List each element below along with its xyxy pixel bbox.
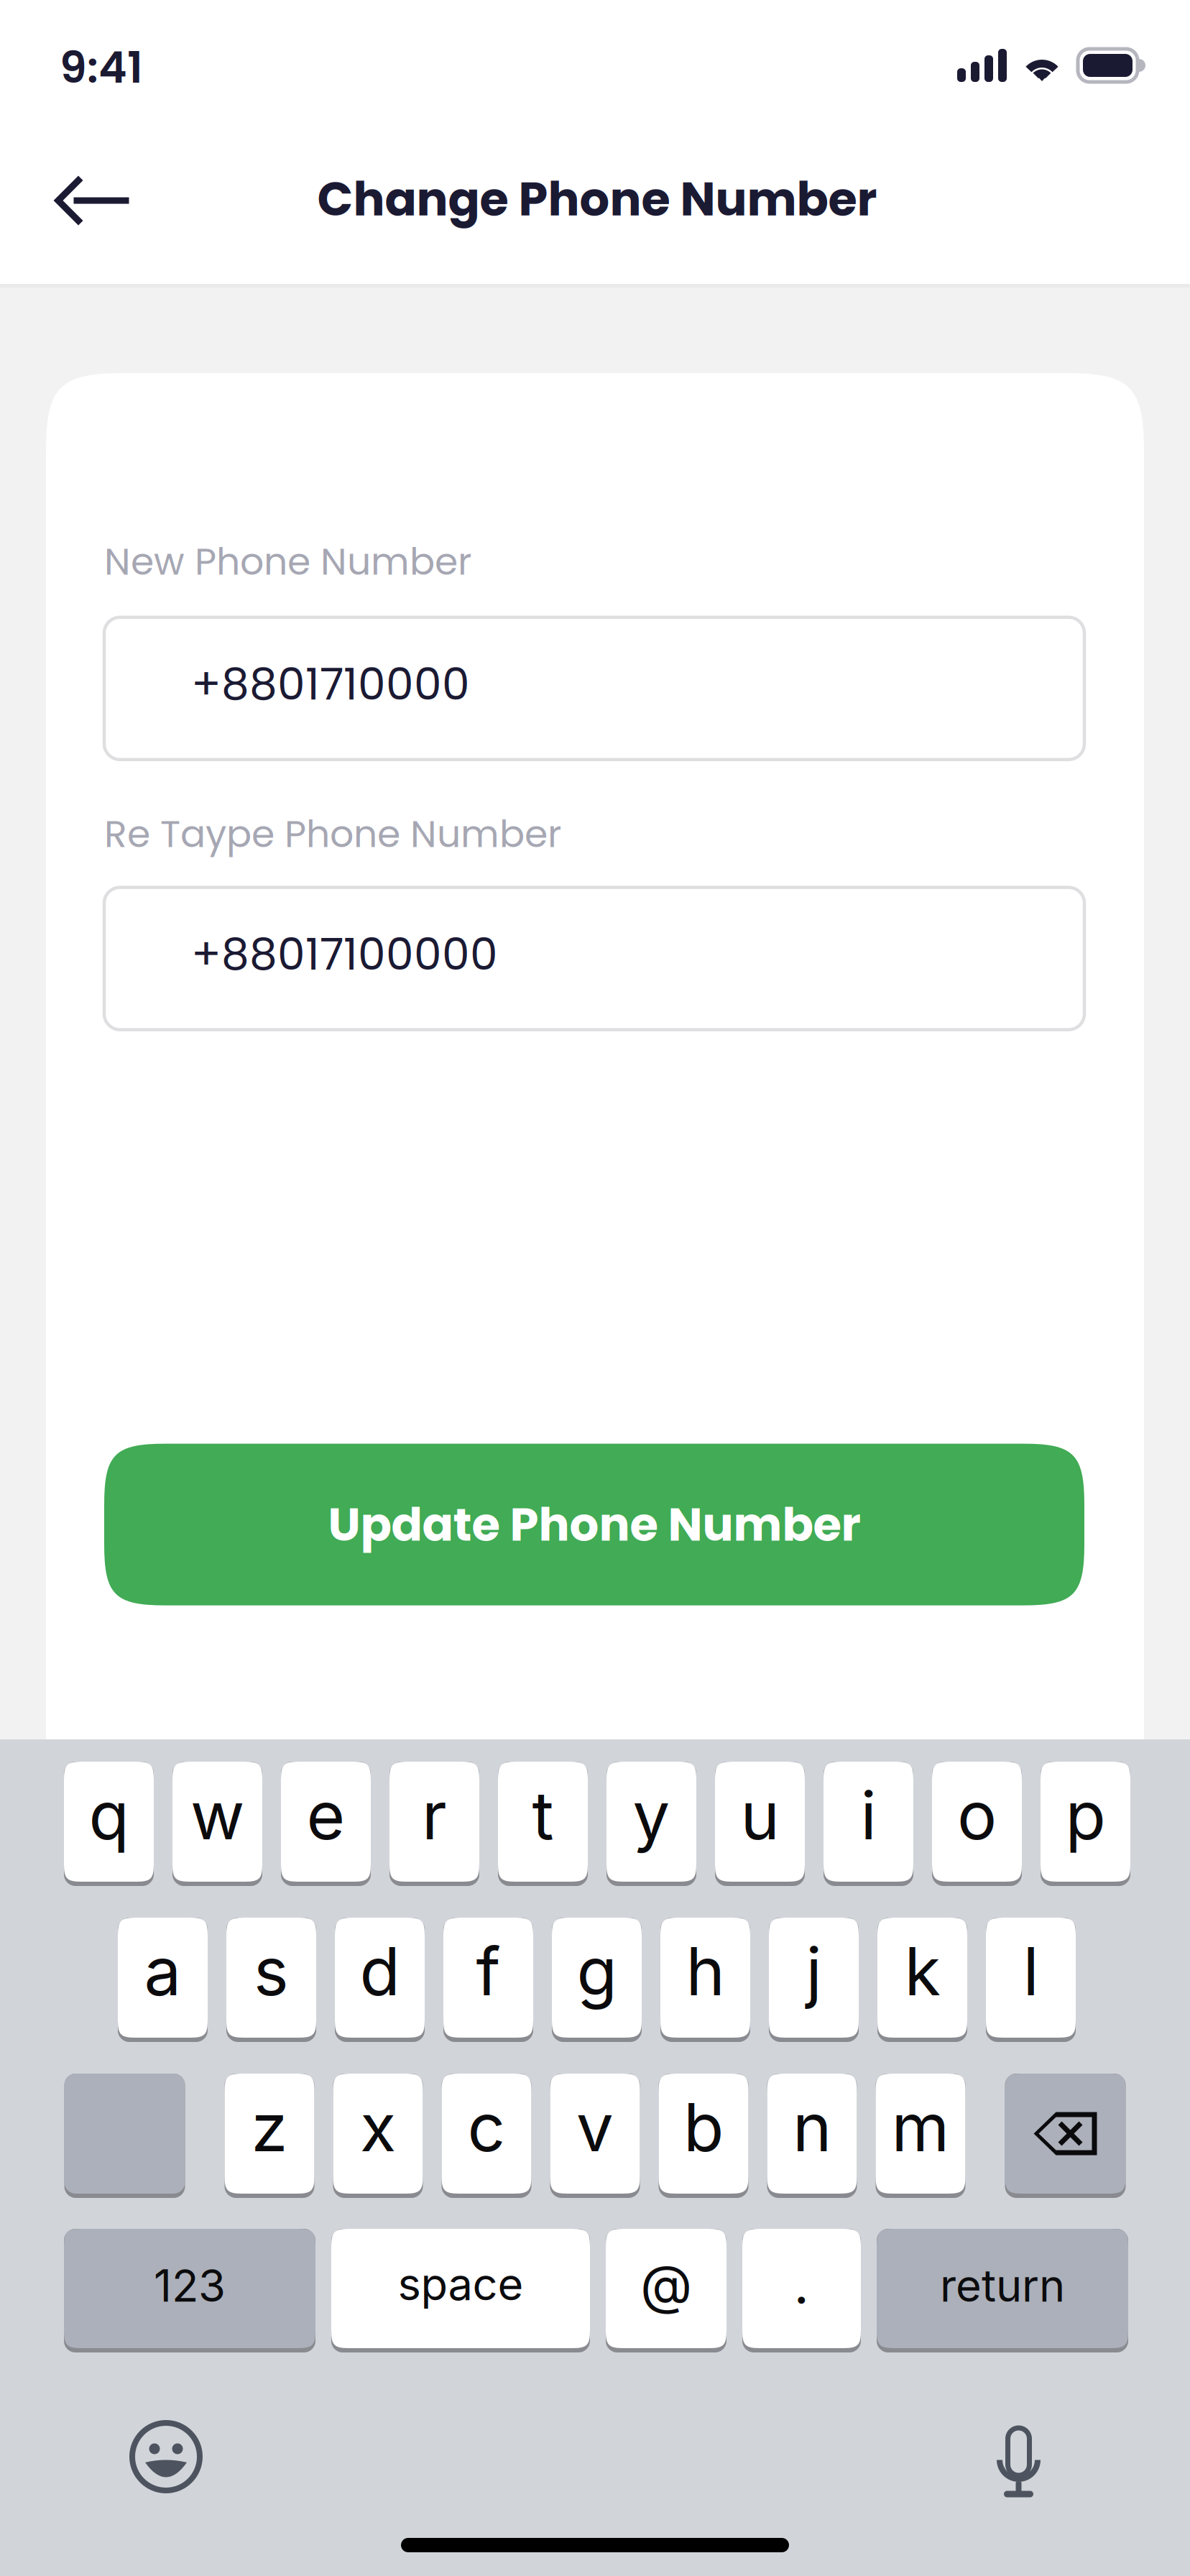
staticText: o (957, 1775, 997, 1855)
staticText: Change Phone Number (317, 166, 877, 232)
staticText: space (398, 2258, 523, 2311)
button[interactable]: u (715, 1762, 805, 1886)
button[interactable]: Delete (1005, 2074, 1126, 2198)
button[interactable]: Update Phone Number (104, 1444, 1084, 1605)
button[interactable]: m (876, 2074, 965, 2198)
button[interactable]: c (442, 2074, 531, 2198)
staticText: q (89, 1775, 129, 1855)
staticText: h (686, 1931, 725, 2011)
staticText: y (633, 1775, 670, 1855)
staticText: e (306, 1775, 345, 1855)
staticText: d (360, 1931, 400, 2011)
button[interactable]: g (552, 1918, 642, 2042)
staticText: @ (640, 2252, 692, 2317)
staticText: c (467, 2087, 506, 2167)
button[interactable]: o (932, 1762, 1022, 1886)
staticText: Re Taype Phone Number (104, 808, 561, 860)
staticText: m (891, 2087, 950, 2167)
button[interactable]: Dictation (997, 2416, 1041, 2488)
button[interactable]: a (118, 1918, 208, 2042)
staticText: k (904, 1931, 940, 2011)
staticText: i (861, 1775, 876, 1855)
button[interactable]: l (986, 1918, 1076, 2042)
staticText: j (806, 1931, 822, 2011)
staticText: u (741, 1775, 779, 1855)
staticText: f (476, 1931, 501, 2011)
button[interactable]: r (389, 1762, 479, 1886)
staticText: w (190, 1775, 244, 1855)
staticText: a (144, 1931, 181, 2011)
staticText: b (683, 2087, 724, 2167)
button[interactable]: j (769, 1918, 859, 2042)
staticText: return (940, 2259, 1065, 2312)
button[interactable]: f (443, 1918, 533, 2042)
staticText: r (422, 1775, 447, 1855)
button[interactable]: @ (606, 2229, 727, 2352)
staticText: s (254, 1931, 289, 2011)
staticText: New Phone Number (104, 535, 471, 588)
button[interactable]: q (64, 1762, 154, 1886)
staticText: g (577, 1931, 617, 2011)
staticText: l (1023, 1931, 1039, 2011)
button[interactable]: p (1041, 1762, 1130, 1886)
button[interactable]: h (660, 1918, 750, 2042)
staticText: v (576, 2087, 614, 2167)
button[interactable]: s (226, 1918, 316, 2042)
staticText: . (794, 2252, 810, 2317)
button[interactable]: x (333, 2074, 423, 2198)
button[interactable]: i (824, 1762, 913, 1886)
staticText: n (793, 2087, 831, 2167)
button[interactable]: b (659, 2074, 748, 2198)
button[interactable]: e (281, 1762, 371, 1886)
button[interactable]: Emoji (129, 2420, 203, 2493)
staticText: x (360, 2087, 396, 2167)
button[interactable]: . (742, 2229, 861, 2352)
button[interactable]: y (606, 1762, 696, 1886)
staticText: p (1065, 1775, 1106, 1855)
button[interactable]: w (172, 1762, 262, 1886)
staticText: 123 (154, 2259, 226, 2312)
button[interactable]: t (498, 1762, 588, 1886)
staticText: t (532, 1775, 554, 1855)
button[interactable]: space (331, 2229, 590, 2352)
button[interactable]: z (225, 2074, 314, 2198)
staticText: +88017100000 (191, 923, 498, 985)
button[interactable]: Shift (64, 2074, 185, 2198)
button[interactable]: v (550, 2074, 640, 2198)
staticText: z (251, 2087, 288, 2167)
staticText: +8801710000 (191, 653, 470, 715)
button[interactable]: d (335, 1918, 425, 2042)
staticText: 9:41 (60, 37, 143, 98)
button[interactable]: Back (32, 154, 151, 247)
button[interactable]: n (767, 2074, 857, 2198)
button[interactable]: 123 (64, 2229, 315, 2352)
button[interactable]: return (877, 2229, 1128, 2352)
staticText: Update Phone Number (328, 1492, 861, 1557)
button[interactable]: k (877, 1918, 967, 2042)
